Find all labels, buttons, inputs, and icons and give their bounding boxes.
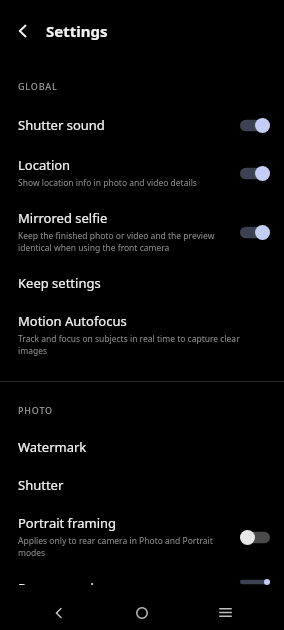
- staticText: Portrait framing: [18, 514, 117, 532]
- staticText: Keep settings: [18, 274, 101, 292]
- button[interactable]: Toggle on: [238, 162, 272, 184]
- staticText: Mirrored selfie: [18, 209, 108, 227]
- staticText: GLOBAL: [18, 80, 58, 92]
- button[interactable]: Portrait framing: [0, 504, 284, 569]
- button[interactable]: Recent apps: [201, 595, 249, 630]
- staticText: Shutter sound: [18, 116, 105, 134]
- button[interactable]: Shutter sound: [0, 104, 284, 146]
- staticText: Track and focus on subjects in real time…: [18, 333, 264, 357]
- button[interactable]: Watermark: [0, 428, 284, 466]
- button[interactable]: Toggle on: [238, 114, 272, 136]
- button[interactable]: Mirrored selfie: [0, 199, 284, 264]
- staticText: Watermark: [18, 438, 87, 456]
- button[interactable]: Toggle on: [238, 221, 272, 243]
- staticText: Show location info in photo and video de…: [18, 177, 197, 189]
- staticText: Motion Autofocus: [18, 312, 127, 330]
- button[interactable]: Keep settings: [0, 264, 284, 302]
- staticText: Shutter: [18, 476, 64, 494]
- button[interactable]: Shutter: [0, 466, 284, 504]
- staticText: PHOTO: [18, 404, 53, 416]
- staticText: Applies only to rear camera in Photo and…: [18, 535, 230, 559]
- staticText: Remove moles: [18, 579, 108, 585]
- staticText: Location: [18, 156, 71, 174]
- button[interactable]: Location: [0, 146, 284, 199]
- button[interactable]: Home: [118, 595, 166, 630]
- button[interactable]: Remove moles: [0, 569, 284, 595]
- staticText: Settings: [46, 21, 108, 41]
- button[interactable]: Toggle off: [238, 526, 272, 548]
- button[interactable]: Motion Autofocus: [0, 302, 284, 367]
- button[interactable]: Back: [35, 595, 83, 630]
- button[interactable]: Back: [6, 14, 40, 48]
- staticText: Keep the finished photo or video and the…: [18, 230, 230, 254]
- button[interactable]: Toggle on: [238, 579, 272, 585]
